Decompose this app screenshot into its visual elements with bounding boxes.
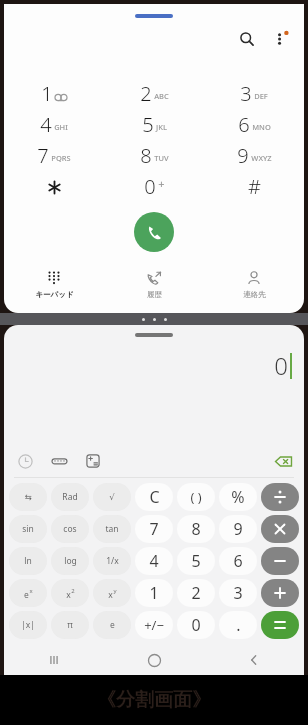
staticText: C <box>149 486 160 508</box>
button[interactable]: C <box>135 483 173 511</box>
staticText: x <box>66 589 71 601</box>
staticText: 5 <box>142 111 154 138</box>
button[interactable]: Recents <box>4 645 104 675</box>
button[interactable]: Delete <box>270 448 296 474</box>
button[interactable] <box>261 483 299 511</box>
button[interactable]: # <box>204 171 304 202</box>
staticText: 5 <box>191 550 201 572</box>
button[interactable]: 1/x <box>93 547 131 575</box>
button[interactable]: 連絡先 <box>204 263 304 307</box>
staticText: Rad <box>62 491 78 503</box>
button[interactable]: キーパッド <box>4 263 104 307</box>
button[interactable]: e <box>93 611 131 639</box>
staticText: # <box>248 173 261 200</box>
staticText: 6 <box>238 111 250 138</box>
staticText: MNO <box>252 122 271 132</box>
staticText: 3 <box>240 80 252 107</box>
button[interactable]: √ <box>93 483 131 511</box>
button[interactable]: 4 <box>4 109 104 140</box>
button[interactable]: 2 <box>104 78 204 109</box>
button[interactable]: Unit converter <box>46 448 72 474</box>
staticText: e <box>110 619 115 631</box>
button[interactable]: x <box>51 579 89 607</box>
staticText: 2 <box>191 582 201 604</box>
staticText: 2 <box>71 587 75 595</box>
staticText: cos <box>63 523 77 535</box>
button[interactable]: 9 <box>219 515 257 543</box>
button[interactable]: 8 <box>104 140 204 171</box>
button[interactable]: ⇆ <box>9 483 47 511</box>
button[interactable]: 5 <box>177 547 215 575</box>
button[interactable]: 1 <box>135 579 173 607</box>
button[interactable]: π <box>51 611 89 639</box>
button[interactable]: ( ) <box>177 483 215 511</box>
button[interactable]: e <box>9 579 47 607</box>
staticText: 《分割画面》 <box>97 688 211 712</box>
button[interactable]: 3 <box>204 78 304 109</box>
button[interactable]: 1 <box>4 78 104 109</box>
button[interactable] <box>261 547 299 575</box>
staticText: 0 <box>144 173 156 200</box>
button[interactable]: 3 <box>219 579 257 607</box>
button[interactable]: cos <box>51 515 89 543</box>
button[interactable]: ln <box>9 547 47 575</box>
button[interactable]: 履歴 <box>104 263 204 307</box>
staticText: JKL <box>156 122 167 132</box>
staticText: 1 <box>149 582 159 604</box>
staticText: 7 <box>37 142 49 169</box>
button[interactable]: Call <box>134 212 174 252</box>
button[interactable]: 6 <box>219 547 257 575</box>
button[interactable]: Rad <box>51 483 89 511</box>
staticText: 7 <box>149 518 159 540</box>
button[interactable]: log <box>51 547 89 575</box>
button[interactable]: +/− <box>135 611 173 639</box>
staticText: x <box>29 587 33 595</box>
button[interactable]: 9 <box>204 140 304 171</box>
button[interactable]: . <box>219 611 257 639</box>
button[interactable]: 2 <box>177 579 215 607</box>
button[interactable]: Search <box>232 24 262 54</box>
button[interactable]: x <box>93 579 131 607</box>
button[interactable]: 0 <box>104 171 204 202</box>
staticText: 1/x <box>106 555 119 567</box>
staticText: π <box>67 619 73 631</box>
button[interactable]: Calculator mode <box>80 448 106 474</box>
button[interactable] <box>4 171 104 202</box>
button[interactable]: History <box>12 448 38 474</box>
staticText: TUV <box>154 153 169 163</box>
staticText: ⇆ <box>24 492 32 502</box>
button[interactable]: 4 <box>135 547 173 575</box>
staticText: ( ) <box>190 488 202 506</box>
button[interactable]: 8 <box>177 515 215 543</box>
button[interactable]: 5 <box>104 109 204 140</box>
button[interactable]: Back <box>204 645 304 675</box>
button[interactable] <box>261 611 299 639</box>
staticText: DEF <box>254 91 268 101</box>
staticText: 8 <box>140 142 152 169</box>
button[interactable]: 7 <box>4 140 104 171</box>
staticText: |x| <box>21 619 35 631</box>
button[interactable]: tan <box>93 515 131 543</box>
staticText: 6 <box>233 550 243 572</box>
button[interactable]: 0 <box>177 611 215 639</box>
staticText: GHI <box>54 122 68 132</box>
staticText: 4 <box>40 111 52 138</box>
button[interactable]: 6 <box>204 109 304 140</box>
button[interactable] <box>261 515 299 543</box>
button[interactable]: |x| <box>9 611 47 639</box>
button[interactable]: sin <box>9 515 47 543</box>
staticText: 0 <box>191 614 201 636</box>
staticText: . <box>236 614 241 636</box>
staticText: ABC <box>154 91 169 101</box>
staticText: tan <box>105 523 119 535</box>
button[interactable]: % <box>219 483 257 511</box>
staticText: + <box>158 176 165 191</box>
staticText: PQRS <box>51 153 71 163</box>
button[interactable]: More options <box>266 24 296 54</box>
button[interactable] <box>261 579 299 607</box>
staticText: x <box>108 589 113 601</box>
staticText: 0 <box>274 349 288 382</box>
staticText: sin <box>22 523 34 535</box>
button[interactable]: 7 <box>135 515 173 543</box>
button[interactable]: Home <box>104 645 204 675</box>
